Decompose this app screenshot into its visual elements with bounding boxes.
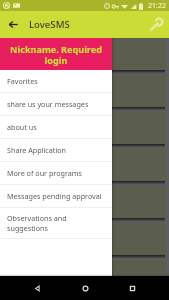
button[interactable]: More of our programs	[0, 162, 112, 184]
button[interactable]: Favorites	[0, 70, 112, 92]
button[interactable]: Back	[0, 11, 27, 38]
button[interactable]: Observations and suggestions	[0, 208, 112, 238]
button[interactable]: share us your messages	[0, 93, 112, 115]
staticText: More of our programs	[7, 168, 82, 178]
staticText: Favorites	[7, 76, 38, 86]
button[interactable]: about us	[0, 116, 112, 138]
staticText: share us your messages	[7, 99, 89, 109]
staticText: Messages pending approval	[7, 191, 102, 201]
staticText: Share Application	[7, 145, 67, 155]
staticText: 21:22	[148, 1, 166, 11]
staticText: Nickname. Required login	[4, 43, 108, 66]
button[interactable]: Home	[63, 276, 107, 300]
button[interactable]: Share Application	[0, 139, 112, 161]
staticText: LoveSMS	[29, 18, 70, 31]
button[interactable]: Settings	[142, 11, 169, 38]
button[interactable]: Messages pending approval	[0, 185, 112, 207]
button[interactable]: Back	[15, 276, 59, 300]
staticText: about us	[7, 122, 37, 132]
button[interactable]: Recents	[110, 276, 154, 300]
staticText: Observations and suggestions	[7, 213, 67, 233]
